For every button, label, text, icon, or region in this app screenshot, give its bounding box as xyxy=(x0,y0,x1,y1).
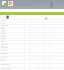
button[interactable]: Window xyxy=(2,1,6,5)
button[interactable]: Apps xyxy=(8,1,13,6)
